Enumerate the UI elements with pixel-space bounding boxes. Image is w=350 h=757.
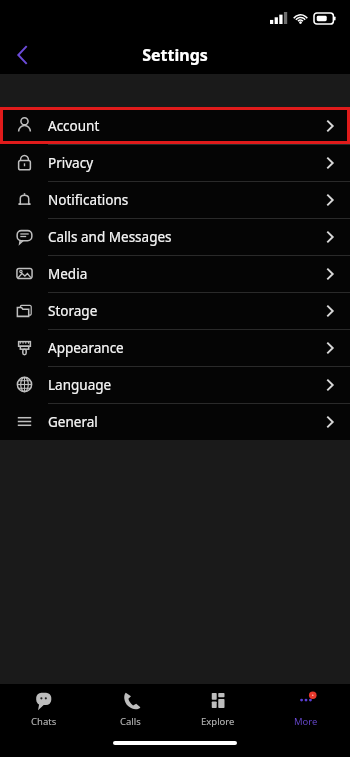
button[interactable]: Language (0, 366, 350, 403)
staticText: More (294, 715, 318, 728)
button[interactable]: Account (0, 107, 350, 144)
staticText: Storage (48, 302, 98, 320)
staticText: Calls (120, 715, 141, 728)
staticText: Privacy (48, 154, 94, 172)
staticText: Settings (142, 44, 208, 66)
staticText: Account (48, 117, 100, 135)
button[interactable]: Explore (174, 684, 262, 734)
staticText: Notifications (48, 191, 129, 209)
staticText: Chats (31, 715, 57, 728)
button[interactable]: Calls and Messages (0, 218, 350, 255)
button[interactable]: More (262, 684, 350, 734)
button[interactable]: Storage (0, 292, 350, 329)
button[interactable]: Privacy (0, 144, 350, 181)
staticText: Language (48, 376, 112, 394)
button[interactable]: Notifications (0, 181, 350, 218)
button[interactable]: Media (0, 255, 350, 292)
staticText: Explore (201, 715, 235, 728)
button[interactable]: Chats (0, 684, 87, 734)
button[interactable]: Calls (87, 684, 174, 734)
button[interactable]: Back (0, 36, 44, 74)
button[interactable]: Appearance (0, 329, 350, 366)
staticText: Calls and Messages (48, 228, 172, 246)
staticText: Appearance (48, 339, 124, 357)
staticText: Media (48, 265, 88, 283)
staticText: General (48, 413, 98, 431)
button[interactable]: General (0, 403, 350, 440)
